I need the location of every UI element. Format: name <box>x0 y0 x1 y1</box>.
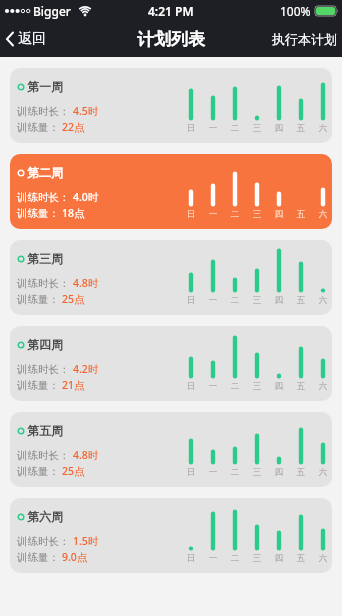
staticText: 25点 <box>62 464 85 478</box>
staticText: 第六周 <box>27 509 63 524</box>
staticText: 六 <box>316 209 330 220</box>
staticText: 第五周 <box>27 423 63 438</box>
staticText: 4:21 PM <box>148 3 194 19</box>
button[interactable]: 返回 <box>5 30 46 48</box>
staticText: 五 <box>294 295 308 306</box>
staticText: Bigger <box>33 3 71 19</box>
staticText: 训练时长： <box>17 535 70 548</box>
staticText: 训练量： <box>17 465 59 478</box>
staticText: 六 <box>316 295 330 306</box>
staticText: 训练量： <box>17 293 59 306</box>
staticText: 日 <box>184 123 198 134</box>
staticText: 四 <box>272 209 286 220</box>
button[interactable]: 第三周 <box>10 240 332 315</box>
staticText: 训练时长： <box>17 449 70 462</box>
staticText: 二 <box>228 381 242 392</box>
staticText: 二 <box>228 553 242 564</box>
staticText: 一 <box>206 553 220 564</box>
staticText: 二 <box>228 467 242 478</box>
staticText: 训练量： <box>17 207 59 220</box>
staticText: 二 <box>228 295 242 306</box>
staticText: 22点 <box>62 120 85 134</box>
staticText: 返回 <box>18 30 46 48</box>
button[interactable]: 执行本计划 <box>272 31 337 47</box>
staticText: 四 <box>272 123 286 134</box>
staticText: 4.0时 <box>73 190 99 204</box>
button[interactable]: 第五周 <box>10 412 332 487</box>
button[interactable]: 第二周 <box>10 154 332 229</box>
button[interactable]: 第六周 <box>10 498 332 573</box>
staticText: 一 <box>206 209 220 220</box>
staticText: 一 <box>206 381 220 392</box>
staticText: 25点 <box>62 292 85 306</box>
staticText: 9.0点 <box>62 550 88 564</box>
staticText: 四 <box>272 381 286 392</box>
staticText: 五 <box>294 553 308 564</box>
staticText: 三 <box>250 467 264 478</box>
staticText: 4.8时 <box>73 448 99 462</box>
staticText: 一 <box>206 123 220 134</box>
staticText: 三 <box>250 123 264 134</box>
button[interactable]: 第四周 <box>10 326 332 401</box>
staticText: 训练时长： <box>17 191 70 204</box>
staticText: 训练量： <box>17 121 59 134</box>
staticText: 4.2时 <box>73 362 99 376</box>
staticText: 二 <box>228 209 242 220</box>
staticText: 五 <box>294 381 308 392</box>
staticText: 训练量： <box>17 551 59 564</box>
staticText: 六 <box>316 467 330 478</box>
staticText: 二 <box>228 123 242 134</box>
staticText: 1.5时 <box>73 534 99 548</box>
button[interactable]: 第一周 <box>10 68 332 143</box>
staticText: 日 <box>184 381 198 392</box>
staticText: 计划列表 <box>137 29 205 50</box>
staticText: 训练时长： <box>17 277 70 290</box>
staticText: 三 <box>250 209 264 220</box>
staticText: 第二周 <box>27 165 63 180</box>
staticText: 第一周 <box>27 79 63 94</box>
staticText: 18点 <box>62 206 85 220</box>
staticText: 五 <box>294 467 308 478</box>
staticText: 六 <box>316 123 330 134</box>
staticText: 六 <box>316 381 330 392</box>
staticText: 四 <box>272 295 286 306</box>
staticText: 4.5时 <box>73 104 99 118</box>
staticText: 一 <box>206 467 220 478</box>
staticText: 日 <box>184 209 198 220</box>
staticText: 三 <box>250 381 264 392</box>
staticText: 4.8时 <box>73 276 99 290</box>
staticText: 训练量： <box>17 379 59 392</box>
staticText: 日 <box>184 295 198 306</box>
staticText: 100% <box>280 3 311 19</box>
staticText: 第三周 <box>27 251 63 266</box>
staticText: 训练时长： <box>17 363 70 376</box>
staticText: 三 <box>250 295 264 306</box>
staticText: 四 <box>272 467 286 478</box>
staticText: 一 <box>206 295 220 306</box>
staticText: 六 <box>316 553 330 564</box>
staticText: 21点 <box>62 378 85 392</box>
staticText: 日 <box>184 553 198 564</box>
staticText: 五 <box>294 123 308 134</box>
staticText: 四 <box>272 553 286 564</box>
staticText: 训练时长： <box>17 105 70 118</box>
staticText: 五 <box>294 209 308 220</box>
staticText: 三 <box>250 553 264 564</box>
staticText: 日 <box>184 467 198 478</box>
staticText: 第四周 <box>27 337 63 352</box>
